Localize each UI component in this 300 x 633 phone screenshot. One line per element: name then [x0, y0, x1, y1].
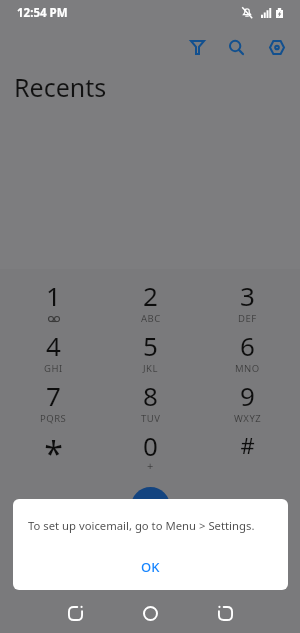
button[interactable]: Home [125, 592, 175, 633]
button[interactable]: 9 [199, 378, 296, 428]
staticText: 3 [240, 278, 255, 313]
staticText: 1 [46, 278, 61, 313]
staticText: JKL [143, 362, 158, 375]
button[interactable]: 7 [5, 378, 102, 428]
staticText: * [44, 430, 63, 476]
button[interactable]: 5 [102, 328, 199, 378]
button[interactable]: Recents [50, 592, 100, 633]
staticText: GHI [44, 362, 63, 375]
staticText: OK [141, 558, 160, 576]
button[interactable]: * [5, 428, 102, 478]
button[interactable]: 2 [102, 278, 199, 328]
staticText: MNO [235, 362, 260, 375]
staticText: DEF [238, 312, 257, 325]
button[interactable]: Search [218, 29, 254, 65]
button[interactable]: 3 [199, 278, 296, 328]
button[interactable]: Filter [179, 29, 215, 65]
staticText: 6 [240, 328, 255, 363]
staticText: 5 [143, 328, 158, 363]
staticText: WXYZ [234, 412, 262, 425]
staticText: PQRS [40, 412, 67, 425]
staticText: 0 [143, 428, 158, 463]
button[interactable]: 8 [102, 378, 199, 428]
staticText: Recents [14, 70, 107, 104]
button[interactable]: Back [200, 592, 250, 633]
button[interactable]: More options [259, 29, 295, 65]
staticText: 8 [143, 378, 158, 413]
staticText: # [240, 430, 255, 460]
staticText: 9 [240, 378, 255, 413]
staticText: 2 [143, 278, 158, 313]
button[interactable]: 0 [102, 428, 199, 478]
button[interactable]: Call [131, 487, 170, 526]
staticText: 12:54 PM [17, 5, 68, 21]
staticText: ABC [141, 312, 161, 325]
button[interactable]: 4 [5, 328, 102, 378]
staticText: + [147, 458, 154, 473]
button[interactable]: 1 [5, 278, 102, 328]
button[interactable]: 6 [199, 328, 296, 378]
staticText: 4 [46, 328, 61, 363]
button[interactable]: # [199, 428, 296, 478]
staticText: 7 [46, 378, 61, 413]
staticText: TUV [141, 412, 161, 425]
button[interactable]: OK [13, 548, 288, 586]
staticText: To set up voicemail, go to Menu > Settin… [28, 518, 255, 533]
